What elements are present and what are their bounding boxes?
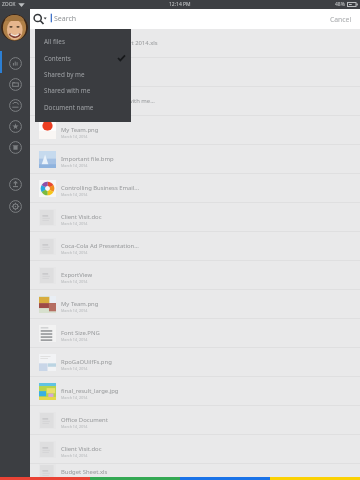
button[interactable]: Cancel [322,11,360,28]
button[interactable]: Shared with me [0,95,30,116]
staticText: March 14, 2014 [61,476,88,480]
button[interactable]: RpoGaOUilfFs.png [30,348,360,377]
button[interactable]: Starred [0,116,30,137]
staticText: Controlling Business Email... [61,184,140,192]
button[interactable]: Font Size.PNG [30,319,360,348]
staticText: Quarterly Business Report 2014.xls [61,39,158,47]
button[interactable]: Client Visit.doc [30,203,360,232]
button[interactable]: Shared with me [35,82,131,98]
button[interactable]: My files [0,74,30,95]
staticText: March 14, 2014 [61,76,88,81]
button[interactable]: Coca-Cola Ad Presentation... [30,232,360,261]
staticText: March 14, 2014 [61,250,88,255]
staticText: Contents [44,54,71,63]
button[interactable]: Budget Sheet.xls [30,464,360,480]
staticText: My Team.png [61,300,99,308]
staticText: ExportView [61,271,93,279]
button[interactable]: Shared by me [35,66,131,82]
button[interactable]: Important file.bmp [30,145,360,174]
staticText: Shared with me [44,86,91,95]
staticText: Coca-Cola Ad Presentation... [61,242,139,250]
staticText: March 14, 2014 [61,279,88,284]
button[interactable]: final_result_large.jpg [30,377,360,406]
button[interactable]: Controlling Business Email... [30,174,360,203]
staticText: Marketing Plan [61,68,104,76]
staticText: Document name [44,103,94,112]
button[interactable]: Document name [35,99,131,115]
staticText: Important file.bmp [61,155,114,163]
staticText: March 14, 2014 [61,424,88,429]
staticText: March 14, 2014 [61,105,88,110]
staticText: RpoGaOUilfFs.png [61,358,112,366]
staticText: All files [44,37,65,46]
staticText: Office Document [61,416,108,424]
button[interactable]: Profile [1,14,28,41]
button[interactable]: Client Visit.doc [30,435,360,464]
staticText: March 14, 2014 [61,366,88,371]
staticText: 12:14 PM [169,1,191,8]
button[interactable]: Contents [35,50,131,66]
button[interactable]: Upload [0,174,30,195]
staticText: March 14, 2014 [61,337,88,342]
button[interactable]: Dashboard [0,53,30,74]
staticText: Cancel [330,15,352,24]
button[interactable]: Settings [0,196,30,217]
staticText: 48% [335,1,345,8]
button[interactable]: Trash [0,137,30,158]
staticText: ZOOX [2,1,16,8]
staticText: Client Visit.doc [61,213,102,221]
staticText: Shared by me [44,70,85,79]
staticText: Budget Sheet.xls [61,468,108,476]
staticText: Client Visit.doc [61,445,102,453]
button[interactable]: ExportView [30,261,360,290]
button[interactable]: Project Timeline Shared with me... [30,87,360,116]
staticText: March 14, 2014 [61,453,88,458]
staticText: March 14, 2014 [61,134,88,139]
staticText: March 14, 2014 [61,163,88,168]
staticText: Project Timeline Shared with me... [61,97,155,105]
staticText: My Team.png [61,126,99,134]
staticText: March 14, 2014 [61,221,88,226]
staticText: March 14, 2014 [61,308,88,313]
staticText: Font Size.PNG [61,329,100,337]
button[interactable]: All files [35,33,131,49]
button[interactable]: Marketing Plan [30,58,360,87]
staticText: final_result_large.jpg [61,387,119,395]
staticText: March 14, 2014 [61,395,88,400]
button[interactable]: Quarterly Business Report 2014.xls [30,29,360,58]
staticText: Search [54,14,77,24]
button[interactable]: My Team.png [30,116,360,145]
button[interactable]: Office Document [30,406,360,435]
staticText: March 14, 2014 [61,192,88,197]
button[interactable]: My Team.png [30,290,360,319]
